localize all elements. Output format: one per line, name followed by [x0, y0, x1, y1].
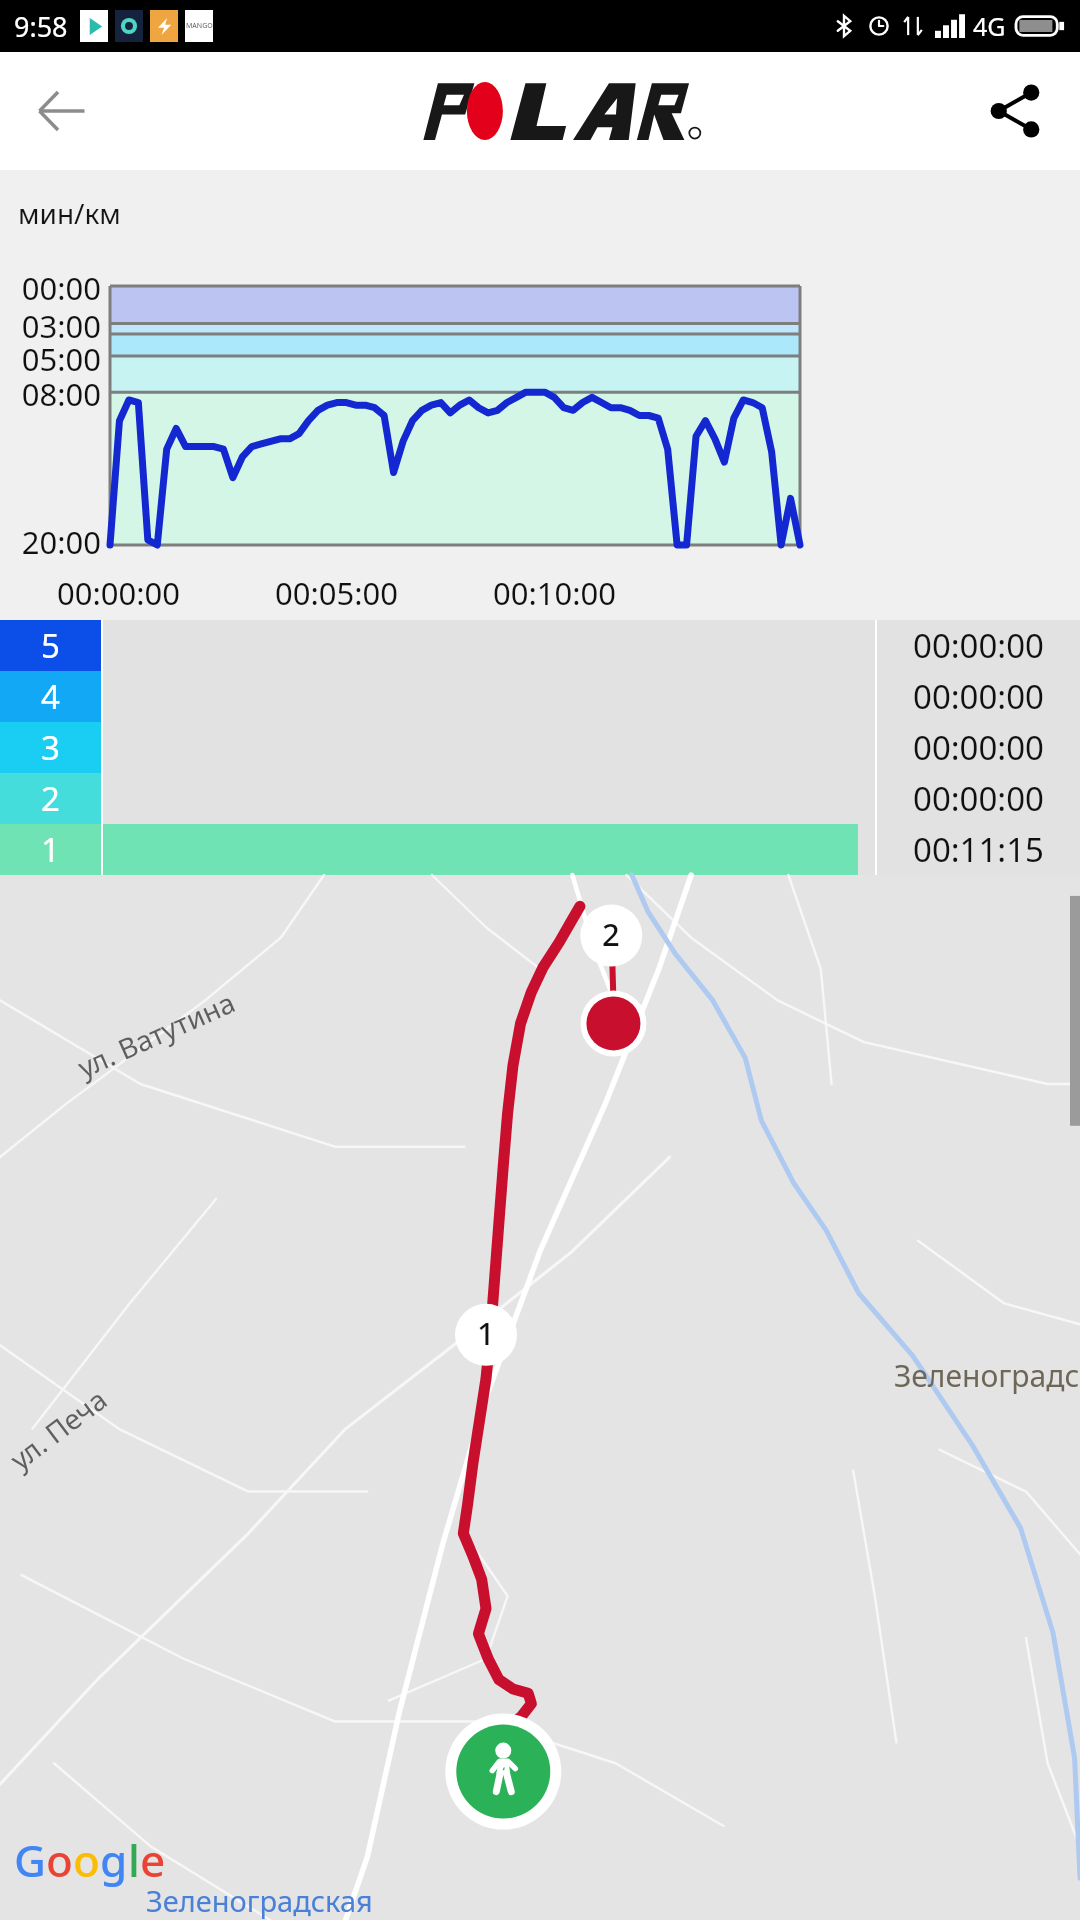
staticText: 9:58 [14, 8, 68, 45]
staticText: 20:00 [21, 521, 101, 563]
staticText: 00:00:00 [57, 572, 181, 614]
staticText: l [128, 1830, 140, 1890]
staticText: 2 [602, 913, 620, 955]
staticText: g [100, 1830, 128, 1890]
staticText: MANGO [186, 21, 213, 31]
staticText: 00:00:00 [913, 725, 1044, 770]
staticText: 1 [41, 827, 60, 872]
staticText: 00:00:00 [913, 623, 1044, 668]
staticText: ул. Ватутина [72, 982, 241, 1086]
staticText: 08:00 [21, 373, 101, 415]
staticText: 4 [41, 674, 60, 719]
staticText: 4G [973, 9, 1006, 43]
staticText: G [14, 1830, 46, 1890]
staticText: Зеленоградс [894, 1355, 1080, 1396]
staticText: 3 [41, 725, 60, 770]
staticText: 05:00 [21, 338, 101, 380]
staticText: ул. Печа [2, 1380, 114, 1478]
staticText: 03:00 [21, 305, 101, 347]
staticText: 00:00 [21, 267, 101, 309]
staticText: 2 [41, 776, 60, 821]
button[interactable]: 3 [0, 722, 1080, 773]
button[interactable]: Back [22, 72, 100, 150]
staticText: e [140, 1830, 166, 1890]
staticText: o [73, 1830, 100, 1890]
staticText: 00:05:00 [275, 572, 399, 614]
button[interactable]: 5 [0, 620, 1080, 671]
staticText: 00:00:00 [913, 674, 1044, 719]
button[interactable]: Share [976, 72, 1054, 150]
staticText: o [46, 1830, 73, 1890]
staticText: 00:10:00 [493, 572, 617, 614]
staticText: Зеленоградская [146, 1881, 373, 1920]
staticText: 5 [41, 623, 60, 668]
staticText: 1 [477, 1312, 495, 1354]
staticText: 00:00:00 [913, 776, 1044, 821]
button[interactable]: 1 [0, 824, 1080, 875]
staticText: мин/км [18, 194, 121, 232]
staticText: 00:11:15 [913, 827, 1044, 872]
button[interactable]: 2 [0, 773, 1080, 824]
button[interactable]: 4 [0, 671, 1080, 722]
